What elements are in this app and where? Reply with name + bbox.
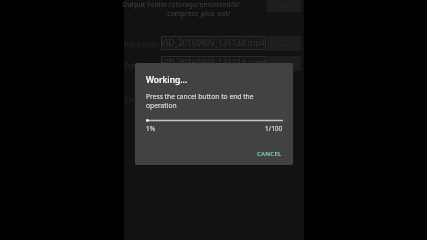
staticText: compress_plus_out/ [167,9,231,18]
staticText: VID_20160809_131134_c.mp4 [161,57,273,68]
staticText: CANCEL [257,150,282,158]
staticText: Working... [146,74,188,86]
staticText: ... [280,56,288,68]
staticText: VID_20160809_131134.mp4 [161,37,265,48]
staticText: Output video [124,61,165,70]
staticText: 1% [146,124,156,133]
button[interactable]: Browse [267,56,301,71]
staticText: Press the cancel button to end the opera… [146,92,283,110]
staticText: Input video [124,40,159,49]
staticText: 1/100 [265,124,283,133]
staticText: ... [280,0,288,9]
staticText: Compression [124,95,168,105]
staticText: Output Folder:/storage/emulated/0/ [122,0,240,9]
button[interactable]: CANCEL [256,148,283,160]
